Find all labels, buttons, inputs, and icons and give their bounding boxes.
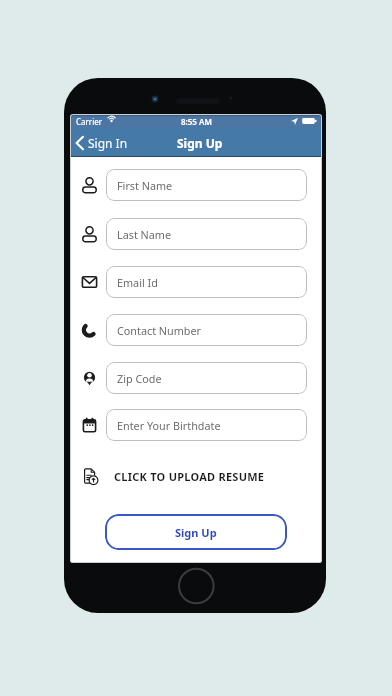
button[interactable]: Contact Number [106,314,307,346]
staticText: Sign Up [177,135,223,151]
staticText: CLICK TO UPLOAD RESUME [114,469,265,484]
staticText: Carrier [76,116,103,127]
button[interactable]: Email Id [106,266,307,298]
staticText: First Name [117,178,173,193]
staticText: Sign Up [175,525,217,540]
button[interactable]: Last Name [106,218,307,250]
button[interactable]: Sign In [70,135,128,151]
staticText: Contact Number [117,323,202,338]
staticText: Sign In [88,135,128,151]
staticText: Last Name [117,227,172,242]
button[interactable]: Sign Up [105,514,287,550]
staticText: Enter Your Birthdate [117,418,221,433]
staticText: Email Id [117,275,158,290]
staticText: Zip Code [117,371,162,386]
button[interactable]: Enter Your Birthdate [106,409,307,441]
button[interactable]: CLICK TO UPLOAD RESUME [82,466,265,486]
button[interactable]: First Name [106,169,307,201]
staticText: 8:55 AM [181,116,212,127]
button[interactable]: Zip Code [106,362,307,394]
